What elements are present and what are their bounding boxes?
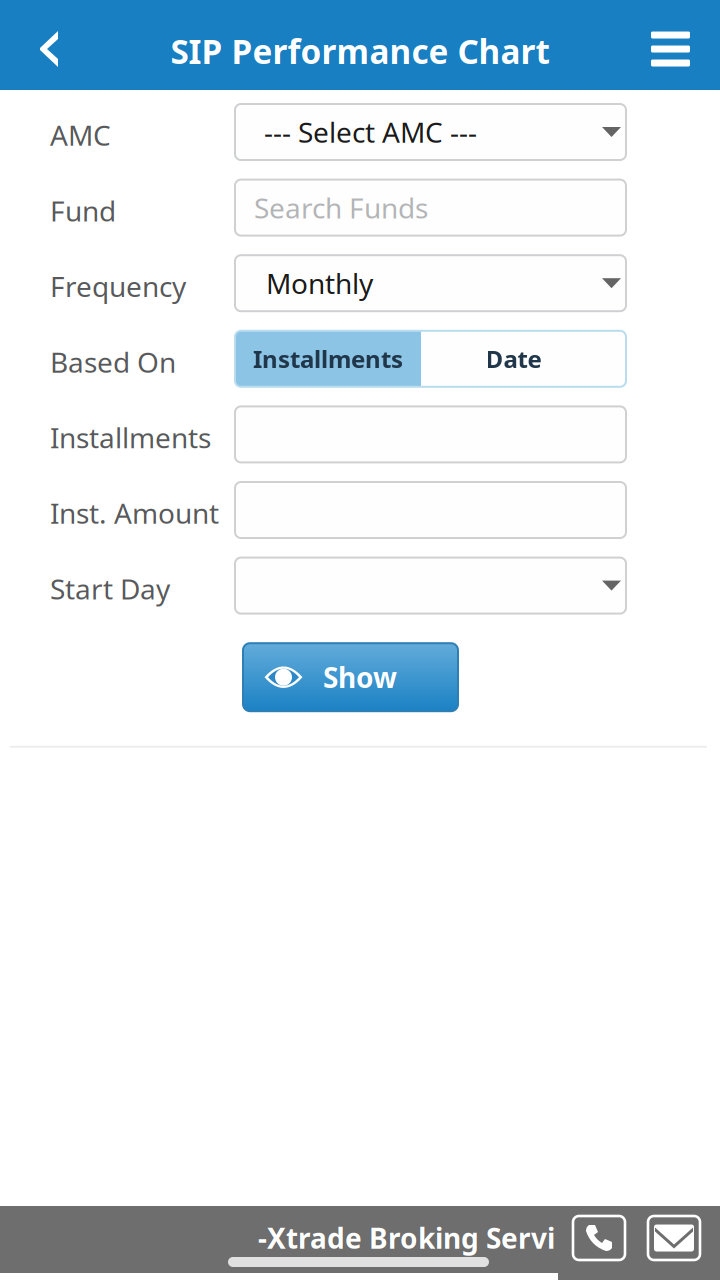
button[interactable] <box>235 558 626 614</box>
button[interactable]: Email <box>648 1216 700 1260</box>
staticText: Installments <box>50 419 211 456</box>
button[interactable] <box>235 482 626 538</box>
button[interactable]: Search Funds <box>235 180 626 236</box>
staticText: --- Select AMC --- <box>264 113 477 151</box>
staticText: Fund <box>50 192 116 229</box>
button[interactable]: Call <box>573 1216 625 1260</box>
staticText: AMC <box>50 116 111 154</box>
button[interactable]: Installments <box>235 331 421 387</box>
staticText: Monthly <box>266 265 373 302</box>
staticText: Based On <box>50 343 176 380</box>
button[interactable]: Menu <box>636 0 705 90</box>
staticText: Search Funds <box>254 189 428 226</box>
staticText: Frequency <box>50 268 186 305</box>
button[interactable]: Show <box>243 643 458 711</box>
button[interactable]: --- Select AMC --- <box>235 104 626 160</box>
staticText: Show <box>323 659 397 696</box>
button[interactable]: Monthly <box>235 255 626 311</box>
staticText: Start Day <box>50 570 170 607</box>
staticText: SIP Performance Chart <box>170 29 549 73</box>
staticText: Installments <box>253 343 403 375</box>
staticText: Inst. Amount <box>50 494 219 532</box>
button[interactable] <box>235 406 626 462</box>
staticText: -Xtrade Broking Servi <box>258 1219 555 1257</box>
button[interactable]: Back <box>0 0 80 90</box>
button[interactable]: Date <box>421 331 626 387</box>
staticText: Date <box>485 343 541 375</box>
